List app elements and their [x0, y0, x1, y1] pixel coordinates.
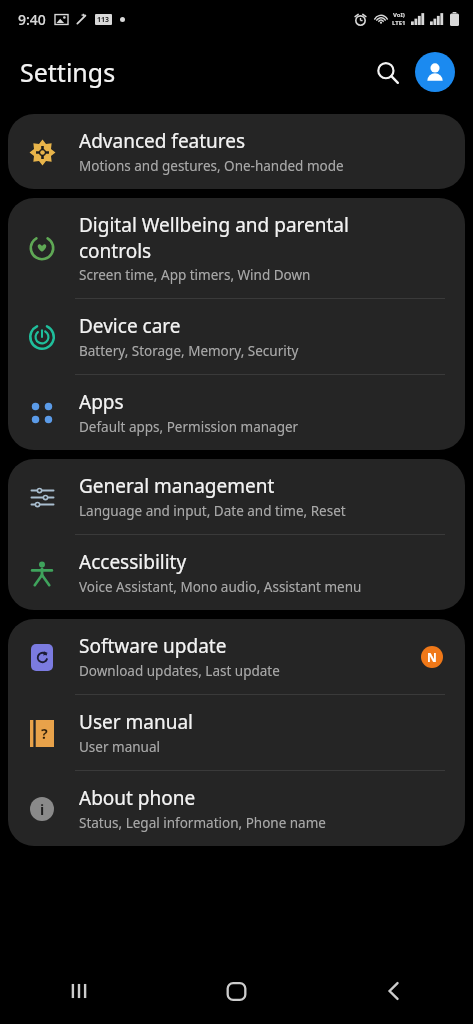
- button[interactable]: ?: [8, 695, 465, 770]
- button[interactable]: Back: [315, 958, 473, 1024]
- staticText: Digital Wellbeing and parental controls: [79, 212, 349, 263]
- staticText: Battery, Storage, Memory, Security: [79, 342, 299, 360]
- staticText: N: [427, 649, 437, 665]
- button[interactable]: Recent apps: [0, 958, 157, 1024]
- button[interactable]: Accessibility: [8, 535, 465, 610]
- button[interactable]: Account: [415, 52, 455, 92]
- staticText: Default apps, Permission manager: [79, 418, 299, 436]
- staticText: Advanced features: [79, 128, 246, 154]
- staticText: About phone: [79, 785, 196, 811]
- staticText: LTE1: [392, 19, 406, 27]
- button[interactable]: Digital Wellbeing and parental controls: [8, 198, 465, 298]
- button[interactable]: Home: [157, 958, 315, 1024]
- button[interactable]: General management: [8, 459, 465, 534]
- staticText: Screen time, App timers, Wind Down: [79, 266, 311, 284]
- button[interactable]: Device care: [8, 299, 465, 374]
- staticText: 113: [97, 15, 110, 25]
- staticText: Status, Legal information, Phone name: [79, 814, 326, 832]
- staticText: Device care: [79, 313, 181, 339]
- button[interactable]: Search: [365, 50, 409, 94]
- staticText: Download updates, Last update: [79, 662, 280, 680]
- button[interactable]: Advanced features: [8, 114, 465, 189]
- staticText: i: [40, 800, 45, 819]
- staticText: User manual: [79, 709, 193, 735]
- button[interactable]: Software update: [8, 619, 465, 694]
- staticText: Settings: [20, 55, 116, 89]
- staticText: Voice Assistant, Mono audio, Assistant m…: [79, 578, 362, 596]
- staticText: Motions and gestures, One-handed mode: [79, 157, 344, 175]
- staticText: General management: [79, 473, 275, 499]
- button[interactable]: Apps: [8, 375, 465, 450]
- staticText: Language and input, Date and time, Reset: [79, 502, 346, 520]
- staticText: Apps: [79, 389, 124, 415]
- staticText: Accessibility: [79, 549, 187, 575]
- staticText: 9:40: [18, 10, 46, 29]
- staticText: VoI): [393, 11, 405, 19]
- button[interactable]: i: [8, 771, 465, 846]
- staticText: ?: [41, 724, 48, 743]
- staticText: Software update: [79, 633, 227, 659]
- staticText: User manual: [79, 738, 160, 756]
